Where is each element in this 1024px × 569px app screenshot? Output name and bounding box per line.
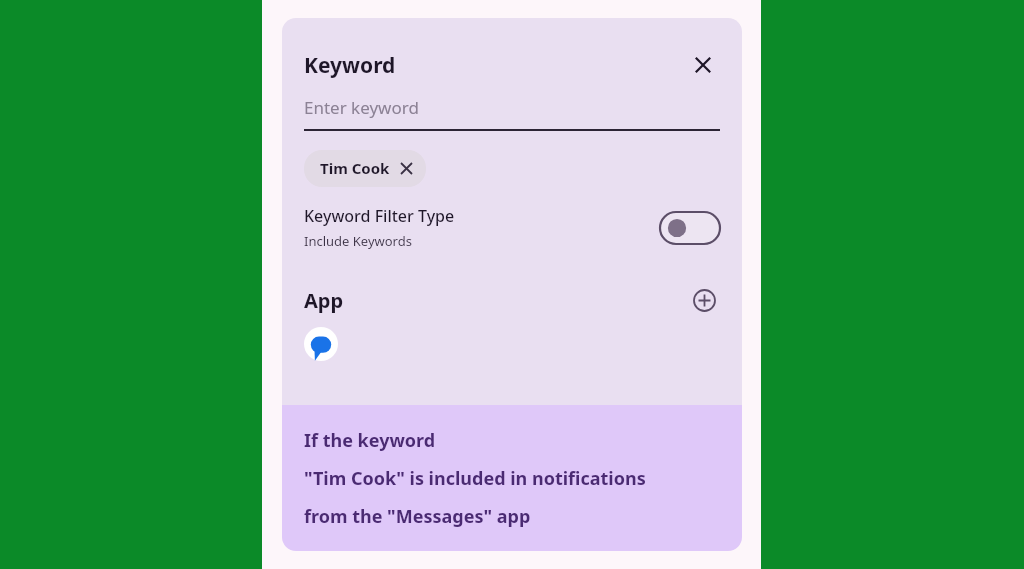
button[interactable]: Enter keyword <box>304 96 720 131</box>
button[interactable]: Add app <box>688 284 720 316</box>
staticText: Keyword Filter Type <box>304 205 455 227</box>
button[interactable]: Tim Cook <box>304 150 426 187</box>
button[interactable]: Keyword Filter Type <box>304 205 720 250</box>
staticText: App <box>304 287 344 314</box>
staticText: "Tim Cook" is included in notifications <box>304 466 646 491</box>
other: Keyword filter toggle <box>660 212 720 244</box>
staticText: Keyword <box>304 51 396 80</box>
button[interactable]: Close <box>686 48 720 82</box>
staticText: Enter keyword <box>304 96 419 119</box>
staticText: Include Keywords <box>304 232 412 250</box>
button[interactable]: Messages app <box>304 327 338 361</box>
staticText: Tim Cook <box>320 158 390 178</box>
staticText: from the "Messages" app <box>304 504 531 529</box>
button[interactable]: If the keyword <box>282 405 742 551</box>
staticText: If the keyword <box>304 428 436 453</box>
